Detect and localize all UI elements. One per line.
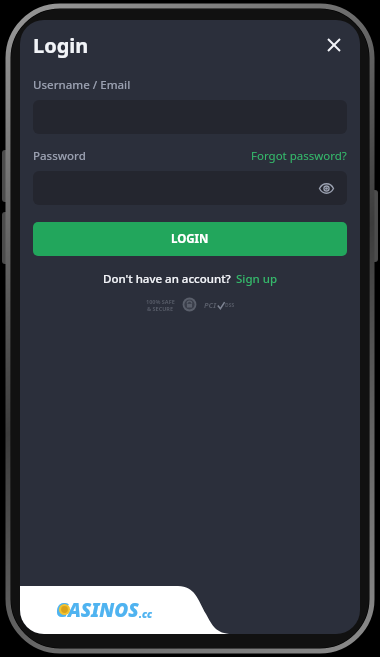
staticText: Login xyxy=(33,32,89,59)
staticText: Username / Email xyxy=(33,77,131,93)
staticText: CASINOS xyxy=(56,597,139,623)
button[interactable]: Close xyxy=(319,30,349,60)
button[interactable]: Forgot password? xyxy=(251,148,347,164)
staticText: .cc xyxy=(139,607,153,621)
staticText: Don't have an account? xyxy=(103,271,231,287)
staticText: DSS xyxy=(225,302,235,309)
button[interactable]: Show password xyxy=(313,175,339,201)
button[interactable]: Show password xyxy=(33,171,347,205)
staticText: PCI xyxy=(204,300,217,310)
staticText: & SECURE xyxy=(147,305,174,312)
button[interactable]: LOGIN xyxy=(33,222,347,256)
staticText: Forgot password? xyxy=(251,148,347,164)
staticText: 100% SAFE xyxy=(146,298,175,305)
button[interactable]: Sign up xyxy=(236,271,278,287)
staticText: Sign up xyxy=(236,271,278,287)
staticText: LOGIN xyxy=(171,231,209,247)
staticText: Password xyxy=(33,148,86,164)
button[interactable]: Casinos.cc xyxy=(56,597,153,623)
